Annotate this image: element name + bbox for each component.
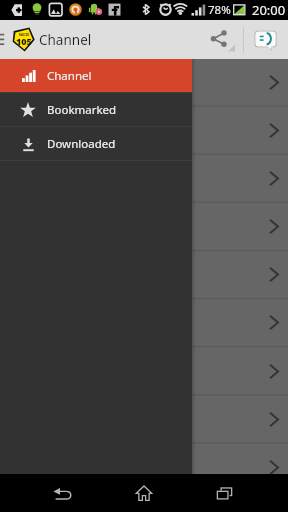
button[interactable]: Chat [248, 20, 288, 59]
staticText: Downloaded [47, 136, 116, 152]
staticText: 105 [16, 35, 32, 47]
button[interactable] [0, 202, 288, 250]
button[interactable] [0, 250, 288, 298]
button[interactable]: Open navigation drawer [0, 20, 9, 59]
staticText: 78% [208, 2, 231, 18]
staticText: Channel [39, 31, 92, 49]
button[interactable]: Share [204, 20, 240, 59]
staticText: RADIO [19, 33, 30, 37]
button[interactable]: Back [42, 474, 82, 512]
button[interactable]: Bookmarked [0, 93, 192, 126]
button[interactable]: Downloaded [0, 127, 192, 160]
button[interactable]: Recent apps [204, 474, 244, 512]
staticText: 20:00 [252, 1, 286, 19]
button[interactable]: Channel [0, 59, 192, 92]
button[interactable] [0, 298, 288, 346]
button[interactable] [0, 443, 288, 491]
staticText: Channel [47, 68, 92, 84]
button[interactable] [0, 395, 288, 443]
button[interactable] [0, 106, 288, 154]
button[interactable] [0, 347, 288, 395]
button[interactable]: Home [124, 474, 164, 512]
button[interactable] [0, 59, 288, 106]
button[interactable] [0, 154, 288, 202]
staticText: Bookmarked [47, 102, 117, 118]
